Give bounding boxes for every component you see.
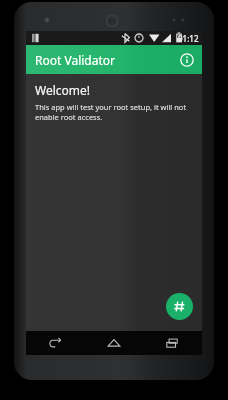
staticText: 01:12 [178, 33, 199, 44]
staticText: Root Validator [35, 52, 115, 68]
button[interactable]: Run root test [166, 293, 193, 320]
staticText: This app will test your root setup, it w… [35, 102, 192, 122]
staticText: Welcome! [35, 82, 91, 98]
button[interactable]: Home [84, 331, 143, 355]
button[interactable]: Back [26, 331, 84, 355]
button[interactable]: About [177, 50, 197, 70]
button[interactable]: Recent apps [143, 331, 202, 355]
